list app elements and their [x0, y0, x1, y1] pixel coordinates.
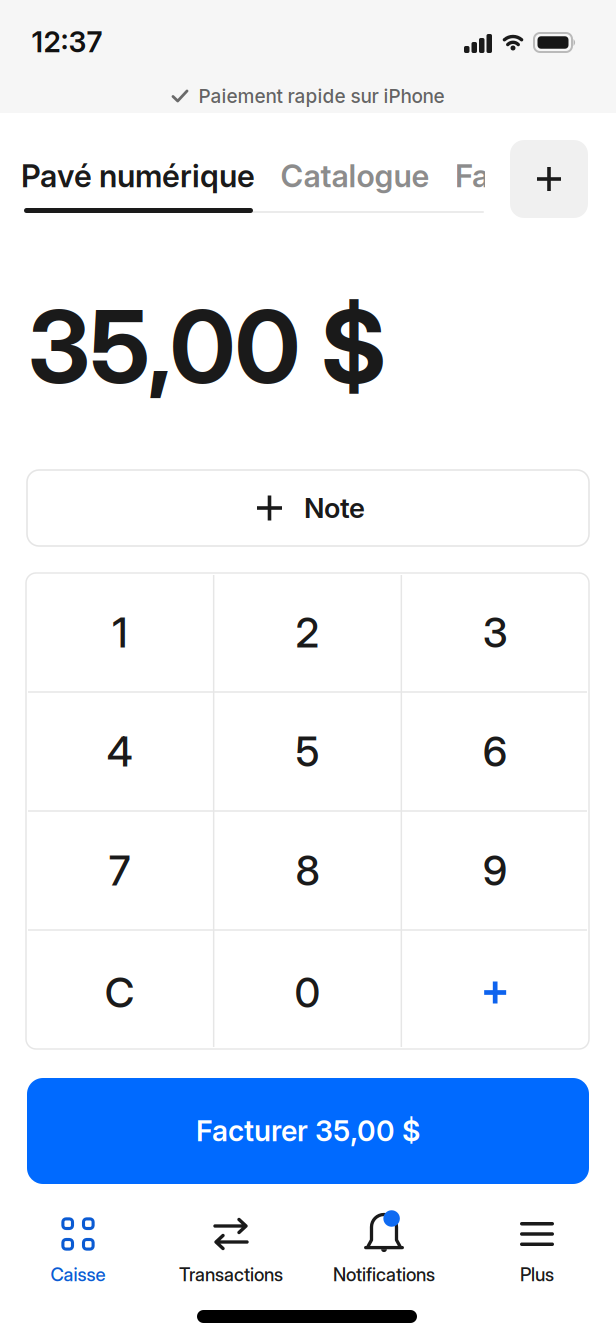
- button[interactable]: 3: [405, 577, 585, 688]
- button[interactable]: Plus: [462, 1215, 612, 1291]
- button[interactable]: Factures: [455, 154, 485, 198]
- button[interactable]: Notifications: [309, 1215, 459, 1291]
- button[interactable]: 8: [218, 815, 397, 926]
- staticText: 7: [109, 846, 131, 895]
- button[interactable]: Clear: [30, 937, 210, 1048]
- staticText: Catalogue: [280, 157, 429, 195]
- staticText: 8: [295, 846, 319, 895]
- staticText: C: [105, 968, 135, 1017]
- staticText: Factures: [455, 157, 580, 195]
- staticText: 3: [483, 608, 508, 657]
- button[interactable]: Note: [27, 470, 589, 546]
- button[interactable]: 1: [30, 577, 210, 688]
- staticText: Paiement rapide sur iPhone: [198, 84, 444, 107]
- button[interactable]: Transactions: [156, 1215, 306, 1291]
- button[interactable]: Caisse: [3, 1215, 153, 1291]
- button[interactable]: Facturer 35,00 $: [27, 1078, 589, 1184]
- staticText: 35,00 $: [28, 286, 386, 407]
- staticText: 9: [483, 846, 508, 895]
- staticText: 1: [112, 608, 127, 657]
- staticText: Note: [304, 491, 365, 525]
- staticText: Pavé numérique: [21, 157, 255, 195]
- button[interactable]: +: [405, 937, 585, 1048]
- button[interactable]: Catalogue: [280, 157, 429, 195]
- button[interactable]: 6: [405, 696, 585, 807]
- staticText: 6: [483, 727, 508, 776]
- button[interactable]: 7: [30, 815, 210, 926]
- button[interactable]: 0: [218, 937, 397, 1048]
- button[interactable]: 5: [218, 696, 397, 807]
- button[interactable]: Pavé numérique: [21, 157, 255, 195]
- staticText: Plus: [520, 1263, 554, 1286]
- button[interactable]: 2: [218, 577, 397, 688]
- staticText: Transactions: [179, 1263, 283, 1286]
- staticText: 5: [295, 727, 319, 776]
- staticText: Caisse: [50, 1263, 105, 1286]
- button[interactable]: 4: [30, 696, 210, 807]
- button[interactable]: Nouvelle vente: [510, 140, 588, 218]
- button[interactable]: 9: [405, 815, 585, 926]
- staticText: Facturer 35,00 $: [196, 1114, 420, 1148]
- staticText: 4: [107, 727, 133, 776]
- staticText: 2: [295, 608, 319, 657]
- staticText: 12:37: [31, 25, 102, 59]
- staticText: Notifications: [333, 1263, 435, 1286]
- staticText: 0: [294, 968, 320, 1017]
